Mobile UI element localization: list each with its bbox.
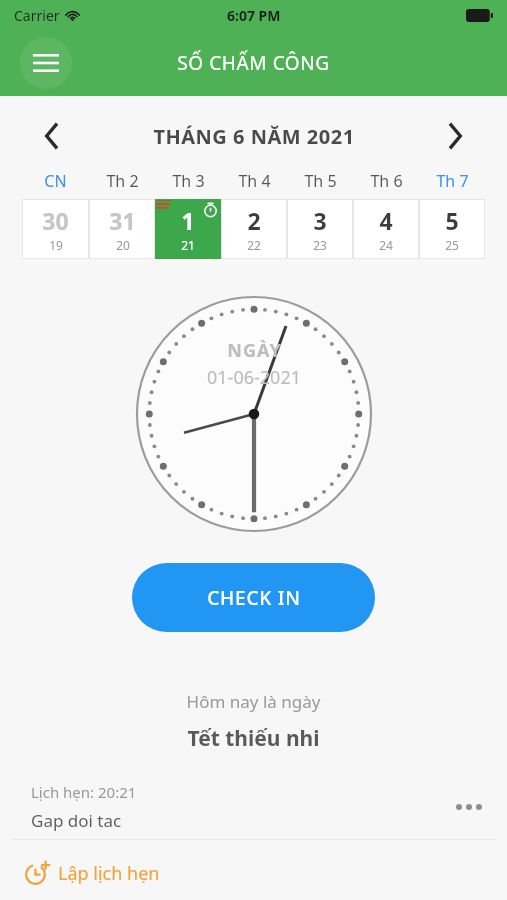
button[interactable]: 31 [89, 199, 155, 259]
staticText: Th 4 [238, 170, 271, 192]
staticText: 19 [49, 237, 63, 253]
staticText: 23 [313, 237, 327, 253]
staticText: 25 [445, 237, 459, 253]
staticText: 22 [247, 237, 261, 253]
staticText: SỐ CHẤM CÔNG [177, 50, 330, 76]
button[interactable]: Lịch hẹn: 20:21 [0, 775, 507, 839]
staticText: Carrier [14, 6, 60, 25]
button[interactable]: More options [447, 785, 491, 829]
staticText: Lịch hẹn: 20:21 [31, 782, 137, 802]
staticText: THÁNG 6 NĂM 2021 [153, 123, 355, 150]
staticText: 30 [42, 205, 69, 236]
staticText: 6:07 PM [227, 6, 281, 25]
staticText: Hôm nay là ngày [0, 690, 507, 713]
staticText: 4 [379, 205, 393, 236]
staticText: CHECK IN [207, 585, 301, 611]
button[interactable]: Previous month [30, 114, 74, 158]
button[interactable]: Menu [20, 37, 72, 89]
staticText: 1 [181, 205, 195, 236]
staticText: 31 [109, 205, 136, 236]
staticText: 5 [445, 205, 459, 236]
button[interactable]: Next month [433, 114, 477, 158]
button[interactable]: 2 [221, 199, 287, 259]
button[interactable]: 4 [353, 199, 419, 259]
button[interactable]: 5 [419, 199, 485, 259]
staticText: Gap doi tac [31, 809, 122, 832]
staticText: 20 [116, 237, 130, 253]
staticText: Th 3 [172, 170, 205, 192]
staticText: NGÀY [227, 338, 282, 363]
button[interactable]: 30 [22, 199, 89, 259]
button[interactable]: CHECK IN [132, 563, 375, 632]
staticText: 24 [379, 237, 393, 253]
button[interactable]: 3 [287, 199, 353, 259]
staticText: Th 6 [370, 170, 403, 192]
staticText: Th 7 [436, 170, 469, 192]
staticText: Th 2 [106, 170, 139, 192]
button[interactable]: Lập lịch hẹn [24, 853, 160, 893]
button[interactable]: 1 [155, 199, 221, 259]
staticText: 01-06-2021 [207, 365, 301, 390]
staticText: Lập lịch hẹn [58, 861, 160, 886]
staticText: 21 [181, 237, 195, 253]
staticText: 3 [313, 205, 327, 236]
staticText: CN [44, 170, 67, 192]
staticText: 2 [247, 205, 261, 236]
staticText: Tết thiếu nhi [0, 724, 507, 753]
staticText: Th 5 [304, 170, 337, 192]
